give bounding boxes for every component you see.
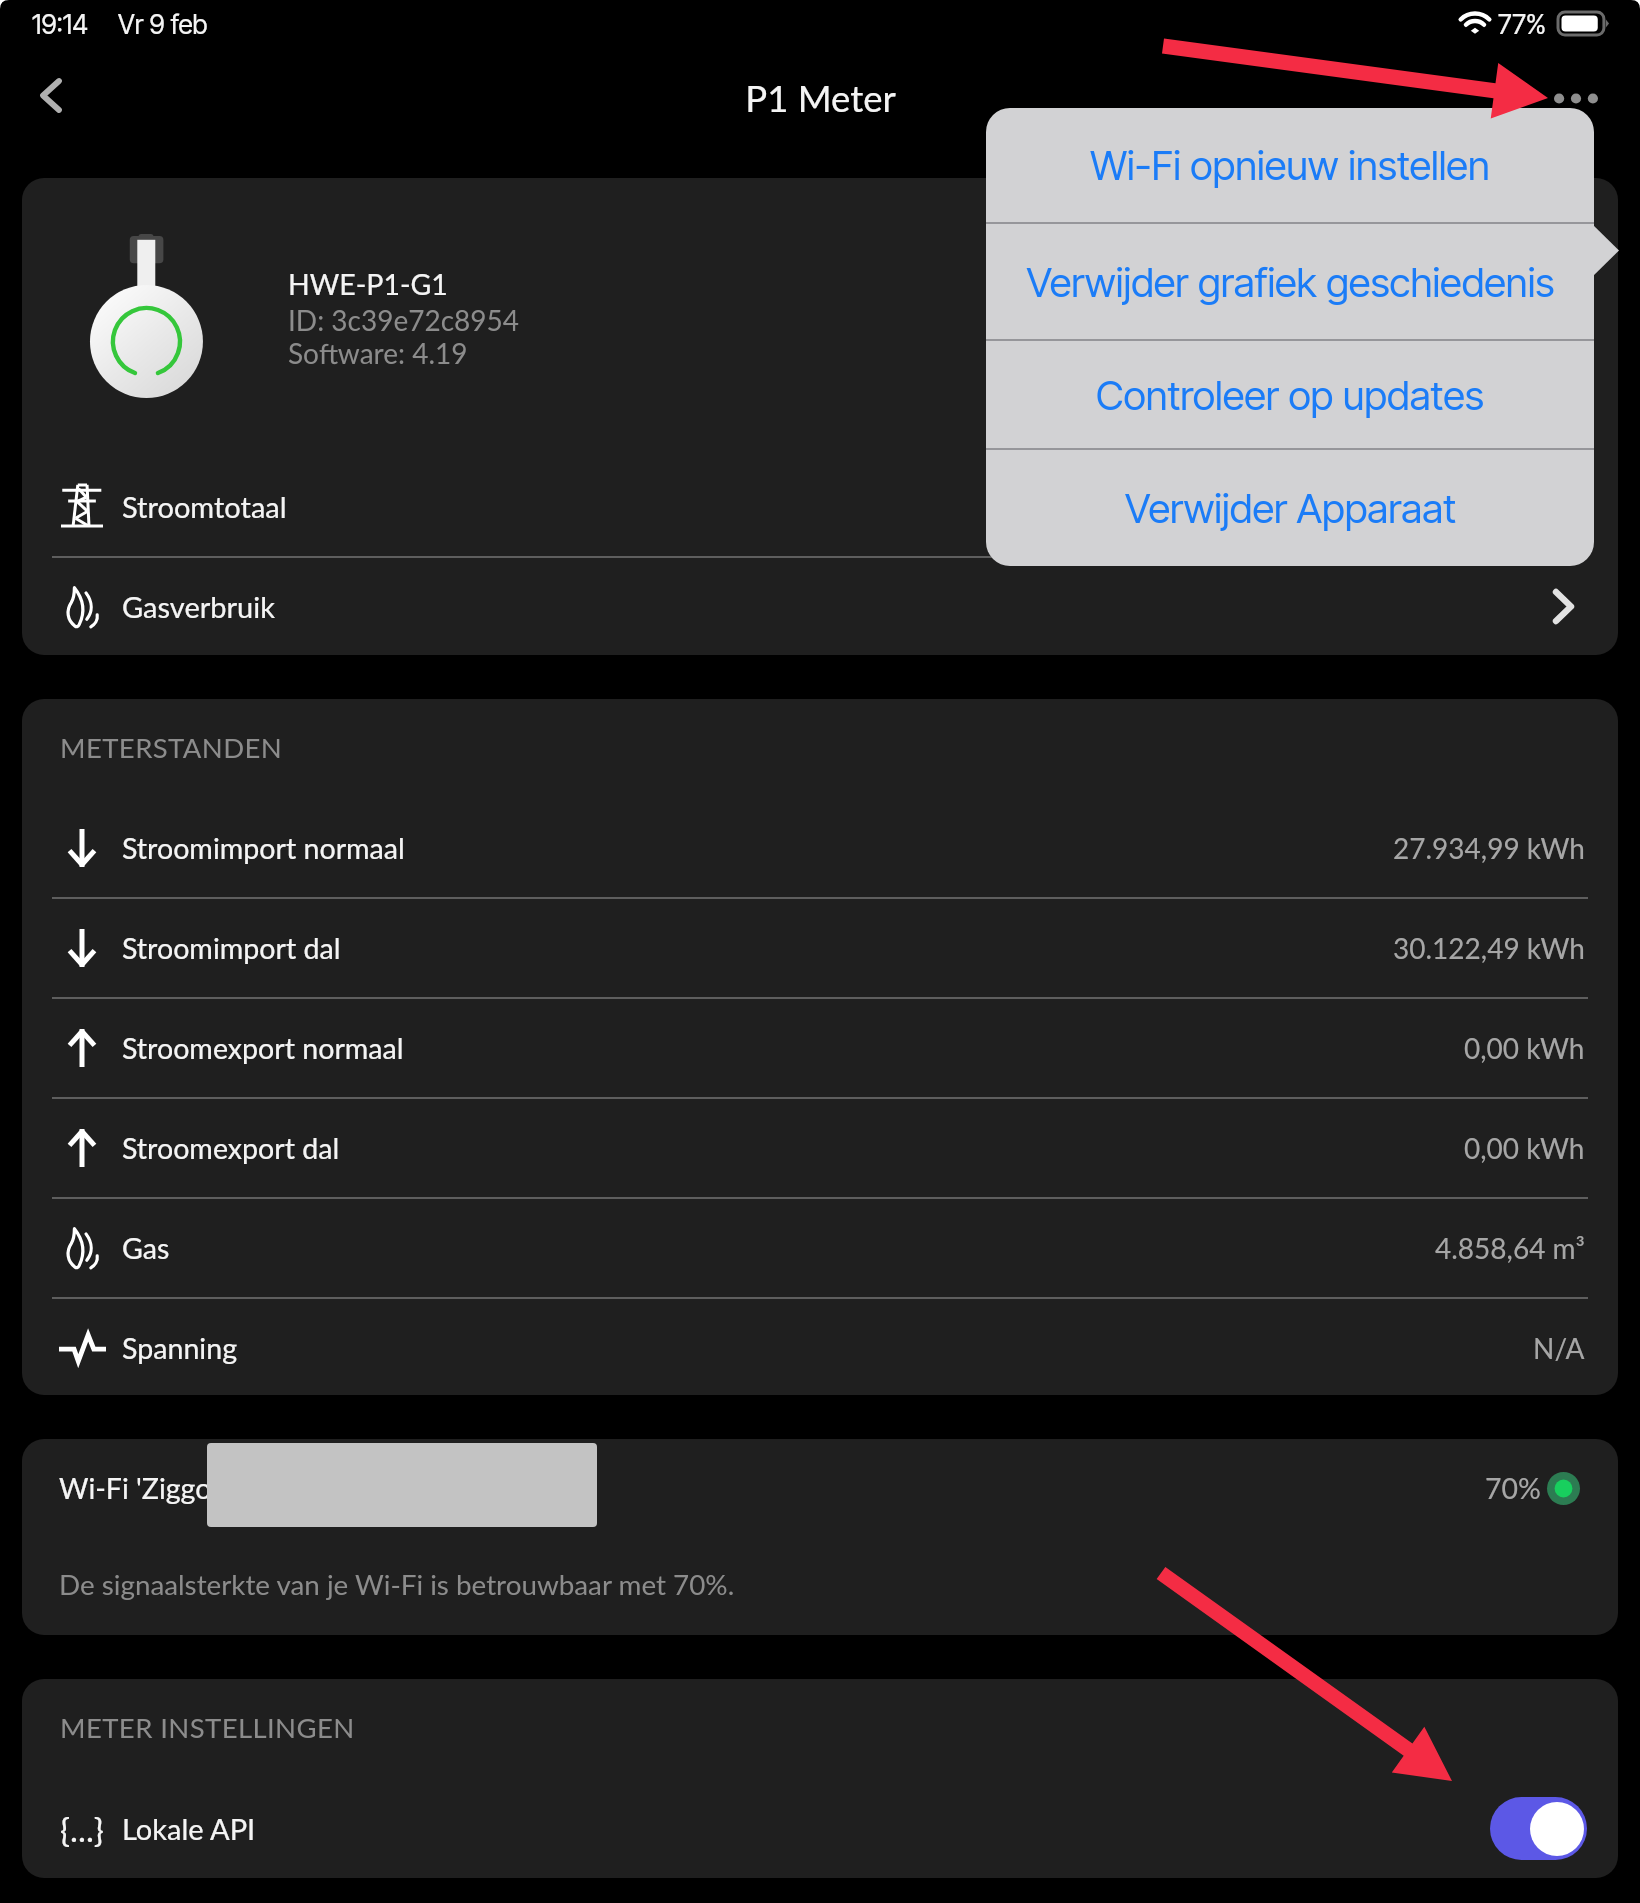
staticText: Stroomexport dal (122, 1131, 340, 1165)
staticText: {...} (60, 1809, 104, 1849)
staticText: Stroomimport normaal (122, 831, 405, 865)
button[interactable]: Spanning (22, 1299, 1618, 1395)
button[interactable]: Wi-Fi opnieuw instellen (986, 108, 1594, 222)
button[interactable]: {...} (22, 1779, 1618, 1878)
staticText: Vr 9 feb (118, 8, 208, 40)
staticText: De signaalsterkte van je Wi-Fi is betrou… (59, 1568, 735, 1601)
staticText: N/A (1533, 1331, 1585, 1365)
staticText: 77% (1498, 8, 1547, 40)
staticText: Spanning (122, 1331, 238, 1365)
staticText: Gas (122, 1231, 170, 1265)
button[interactable]: Wi-Fi 'Ziggo (22, 1449, 1618, 1527)
button[interactable]: Lokale API toggle (1490, 1797, 1587, 1860)
button[interactable]: Stroomtotaal (22, 456, 1618, 556)
staticText: Verwijder grafiek geschiedenis (1026, 258, 1555, 307)
button[interactable]: Stroomimport dal (22, 899, 1618, 996)
staticText: Controleer op updates (1096, 371, 1484, 420)
button[interactable]: Gasverbruik (22, 558, 1618, 655)
staticText: 30.122,49 kWh (1393, 931, 1585, 965)
staticText: Stroomexport normaal (122, 1031, 404, 1065)
staticText: Wi-Fi 'Ziggo (59, 1471, 212, 1505)
button[interactable]: Verwijder Apparaat (986, 450, 1594, 566)
button[interactable]: Stroomexport normaal (22, 999, 1618, 1096)
staticText: Wi-Fi opnieuw instellen (1090, 141, 1490, 190)
staticText: 70% (1485, 1471, 1541, 1505)
staticText: Stroomimport dal (122, 931, 341, 965)
staticText: Lokale API (122, 1811, 256, 1846)
staticText: Stroomtotaal (122, 489, 287, 524)
button[interactable]: Verwijder grafiek geschiedenis (986, 224, 1594, 340)
staticText: METERSTANDEN (60, 731, 283, 764)
button[interactable]: Gas (22, 1199, 1618, 1296)
staticText: P1 Meter (745, 76, 896, 120)
staticText: 27.934,99 kWh (1393, 831, 1585, 865)
staticText: ID: 3c39e72c8954 (288, 303, 519, 337)
staticText: Verwijder Apparaat (1125, 484, 1456, 533)
staticText: 4.858,64 m³ (1435, 1231, 1585, 1265)
button[interactable]: Controleer op updates (986, 341, 1594, 449)
button[interactable]: More options (1514, 62, 1598, 134)
staticText: 19:14 (32, 8, 88, 40)
button[interactable]: Back (13, 57, 89, 133)
staticText: METER INSTELLINGEN (60, 1711, 355, 1744)
staticText: 0,00 kWh (1464, 1131, 1585, 1165)
staticText: Software: 4.19 (288, 336, 468, 370)
button[interactable]: Stroomimport normaal (22, 799, 1618, 896)
staticText: HWE-P1-G1 (288, 267, 448, 301)
button[interactable]: Stroomexport dal (22, 1099, 1618, 1196)
staticText: Gasverbruik (122, 589, 275, 624)
staticText: 0,00 kWh (1464, 1031, 1585, 1065)
